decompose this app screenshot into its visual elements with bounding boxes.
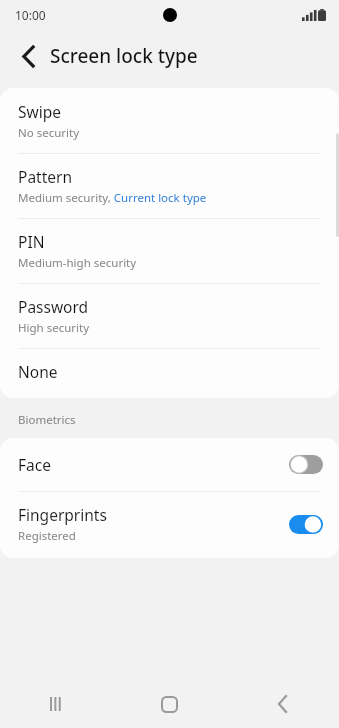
button[interactable]: None (0, 349, 339, 398)
button[interactable]: Password (0, 284, 339, 348)
button[interactable]: Pattern (0, 154, 339, 218)
staticText: None (18, 361, 58, 382)
staticText: Registered (18, 528, 76, 544)
staticText: Swipe (18, 101, 61, 122)
button[interactable]: Fingerprints (0, 492, 339, 558)
button[interactable]: Off (289, 455, 323, 474)
button[interactable]: Face (0, 438, 339, 491)
button[interactable]: Recents (0, 680, 113, 728)
staticText: Screen lock type (50, 43, 198, 69)
staticText: 10:00 (15, 7, 46, 23)
staticText: Password (18, 296, 89, 317)
button[interactable]: Back (10, 38, 46, 74)
staticText: Fingerprints (18, 504, 107, 525)
staticText: PIN (18, 231, 45, 252)
button[interactable]: Swipe (0, 88, 339, 153)
button[interactable]: On (289, 515, 323, 534)
staticText: High security (18, 320, 90, 336)
staticText: Face (18, 454, 51, 475)
staticText: Pattern (18, 166, 72, 187)
button[interactable]: Home (113, 680, 226, 728)
button[interactable]: PIN (0, 219, 339, 283)
staticText: Medium-high security (18, 255, 137, 271)
staticText: Medium security, Current lock type (18, 190, 207, 206)
button[interactable]: Back (226, 680, 339, 728)
staticText: No security (18, 125, 80, 141)
staticText: Biometrics (18, 412, 76, 428)
